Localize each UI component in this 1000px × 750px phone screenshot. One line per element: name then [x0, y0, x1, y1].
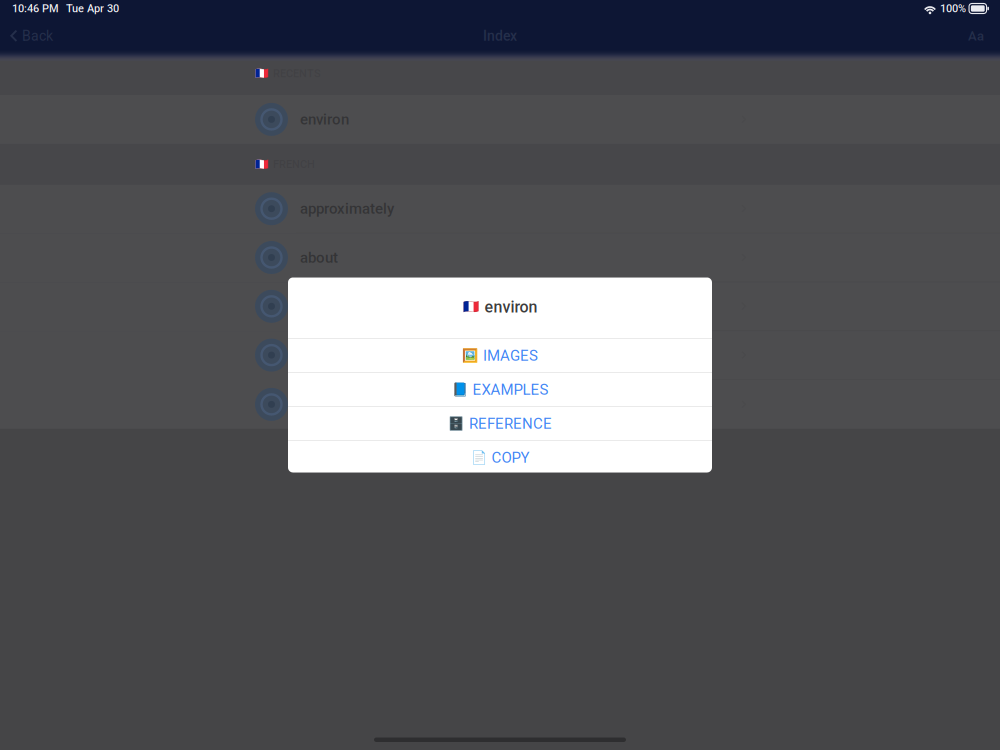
button[interactable]: Back	[0, 22, 61, 50]
button[interactable]: 📘	[288, 373, 712, 406]
button[interactable]: about	[0, 234, 1000, 282]
staticText: Index	[483, 28, 517, 44]
staticText: IMAGES	[483, 347, 538, 364]
staticText: environ	[300, 111, 349, 128]
staticText: 📘	[451, 382, 467, 397]
staticText: COPY	[491, 449, 529, 466]
staticText: 🇫🇷	[462, 299, 478, 315]
staticText: Aa	[968, 28, 984, 44]
staticText: about	[300, 249, 338, 266]
button[interactable]: 🗄️	[288, 407, 712, 440]
staticText: 10:46 PM	[12, 2, 59, 15]
button[interactable]: Text size	[958, 22, 994, 50]
staticText: EXAMPLES	[472, 381, 548, 398]
staticText: 100%	[940, 2, 966, 15]
staticText: 🖼️	[462, 348, 478, 363]
staticText: 📄	[470, 450, 486, 465]
button[interactable]: nearly	[0, 331, 1000, 380]
staticText: 🗄️	[448, 416, 464, 431]
staticText: roughly	[300, 396, 350, 413]
staticText: Tue Apr 30	[66, 2, 119, 15]
staticText: 🇫🇷	[255, 158, 269, 171]
staticText: REFERENCE	[469, 415, 552, 432]
button[interactable]: approximately	[0, 185, 1000, 234]
staticText: Back	[22, 28, 53, 44]
staticText: environ	[484, 298, 537, 316]
button[interactable]: roughly	[0, 380, 1000, 429]
button[interactable]: 🖼️	[288, 339, 712, 372]
button[interactable]: 📄	[288, 441, 712, 474]
staticText: 🇫🇷	[255, 67, 269, 80]
button[interactable]: around	[0, 282, 1000, 331]
staticText: approximately	[300, 200, 394, 217]
